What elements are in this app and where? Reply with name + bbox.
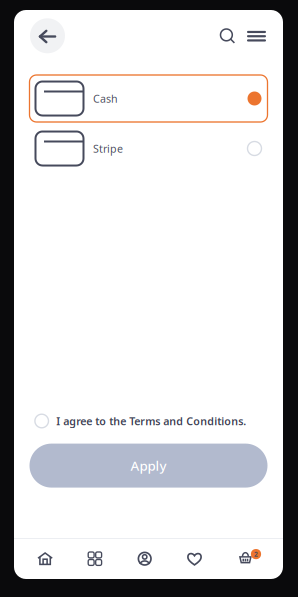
button[interactable]: Cash xyxy=(29,75,267,122)
button[interactable]: Home xyxy=(20,544,70,574)
button[interactable]: Back xyxy=(30,18,65,53)
staticText: Cash xyxy=(93,91,118,106)
staticText: Stripe xyxy=(93,141,123,156)
button[interactable]: Stripe xyxy=(29,125,267,172)
button[interactable]: Profile xyxy=(120,544,170,574)
button[interactable]: Categories xyxy=(70,544,120,574)
staticText: 2 xyxy=(254,550,258,559)
button[interactable]: Menu xyxy=(247,26,266,45)
button[interactable]: I agree to the Terms and Conditions. xyxy=(29,408,267,434)
staticText: Apply xyxy=(130,457,166,474)
button[interactable]: Cart xyxy=(219,544,269,574)
staticText: I agree to the Terms and Conditions. xyxy=(56,414,246,428)
button[interactable]: Apply xyxy=(29,444,267,488)
button[interactable]: Search xyxy=(220,28,235,43)
button[interactable]: Favorites xyxy=(170,544,219,574)
